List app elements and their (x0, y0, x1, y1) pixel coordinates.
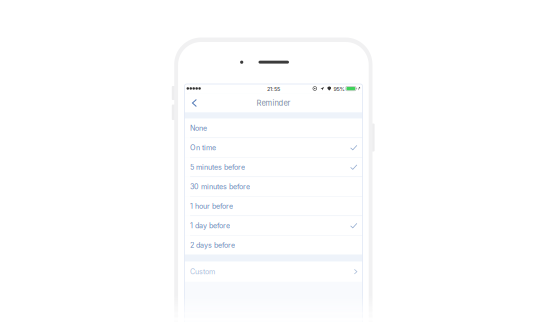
button[interactable]: 5 minutes before (184, 158, 362, 177)
button[interactable]: 1 day before (184, 216, 362, 235)
button[interactable]: Back (185, 94, 203, 112)
staticText: Custom (190, 267, 215, 276)
staticText: 30 minutes before (190, 182, 250, 191)
staticText: 95% (333, 86, 344, 92)
staticText: 1 day before (190, 221, 230, 230)
button[interactable]: None (184, 119, 362, 138)
button[interactable]: On time (184, 138, 362, 157)
staticText: 1 hour before (190, 202, 233, 210)
staticText: On time (190, 143, 216, 152)
staticText: Reminder (256, 98, 290, 108)
button[interactable]: 1 hour before (184, 197, 362, 216)
staticText: 2 days before (190, 241, 235, 249)
staticText: 5 minutes before (190, 163, 245, 171)
button[interactable]: 2 days before (184, 236, 362, 255)
staticText: 21:55 (267, 86, 280, 92)
button[interactable]: 30 minutes before (184, 177, 362, 196)
button[interactable]: Custom (184, 262, 362, 282)
staticText: None (190, 124, 207, 132)
